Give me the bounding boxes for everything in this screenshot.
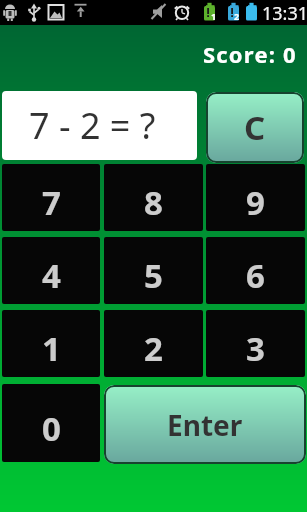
staticText: 6 [246,253,265,298]
staticText: 9 [246,180,265,225]
staticText: 7 - 2 = ? [29,101,156,150]
staticText: 7 [42,180,61,225]
button[interactable]: C [206,92,304,163]
staticText: 1 [211,10,217,22]
staticText: 0 [42,406,61,451]
staticText: 2 [144,326,163,371]
button[interactable]: 4 [2,237,100,304]
staticText: 13:31 [262,1,307,26]
button[interactable]: 5 [104,237,203,304]
button[interactable]: 1 [2,310,100,377]
button[interactable]: 0 [2,384,100,462]
button[interactable]: 2 [104,310,203,377]
staticText: C [244,105,266,150]
staticText: 2 [234,10,240,22]
staticText: 8 [144,180,163,225]
button[interactable]: 9 [206,164,305,231]
button[interactable]: 6 [206,237,305,304]
staticText: Enter [167,406,243,444]
button[interactable]: 8 [104,164,203,231]
button[interactable]: 7 - 2 = ? [2,91,197,160]
button[interactable]: 7 [2,164,100,231]
staticText: 3 [246,326,265,371]
staticText: Score: 0 [203,39,297,69]
button[interactable]: Enter [104,385,306,464]
staticText: 1 [42,326,61,371]
button[interactable]: 3 [206,310,305,377]
staticText: 4 [42,253,61,298]
staticText: 5 [144,253,163,298]
